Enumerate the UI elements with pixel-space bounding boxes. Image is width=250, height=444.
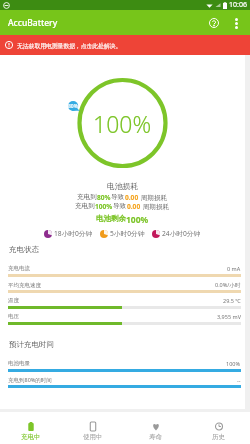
- staticText: 29.5 ℃: [223, 297, 241, 304]
- button[interactable]: 电压: [0, 312, 245, 328]
- button[interactable]: 平均充电速度: [0, 280, 245, 296]
- staticText: 充电到80%的时间: [8, 376, 52, 384]
- button[interactable]: 无法获取用电测量数据，点击此处解决。: [0, 35, 250, 55]
- button[interactable]: 充电中: [0, 416, 62, 441]
- staticText: 10:06: [229, 0, 247, 10]
- staticText: 历史: [212, 433, 225, 441]
- staticText: 平均充电速度: [8, 282, 41, 289]
- staticText: 导致: [111, 193, 125, 201]
- button[interactable]: 使用中: [62, 416, 124, 441]
- staticText: 导致: [113, 202, 127, 210]
- staticText: 周期损耗: [141, 202, 170, 211]
- button[interactable]: Help: [203, 12, 225, 34]
- staticText: 100%: [226, 360, 241, 367]
- staticText: 电池电量: [8, 360, 30, 367]
- staticText: 使用中: [83, 433, 103, 441]
- staticText: 0.00: [125, 193, 139, 202]
- button[interactable]: 充电电流: [0, 264, 245, 280]
- staticText: 充电到: [77, 193, 97, 201]
- button[interactable]: 18小时0分钟: [44, 229, 93, 238]
- staticText: 预计充电时间: [9, 340, 245, 349]
- staticText: --: [237, 377, 241, 384]
- staticText: 100%: [93, 108, 152, 139]
- staticText: 充电电流: [8, 265, 30, 272]
- staticText: 寿命: [149, 433, 162, 441]
- button[interactable]: 历史: [187, 416, 250, 441]
- staticText: 5小时0分钟: [110, 229, 145, 238]
- staticText: 18小时0分钟: [54, 229, 93, 238]
- staticText: 充电到: [75, 202, 95, 210]
- button[interactable]: 电池电量: [0, 359, 245, 375]
- staticText: 3,955 mV: [217, 313, 241, 320]
- staticText: 电压: [8, 313, 19, 320]
- staticText: 0.0%/小时: [215, 281, 241, 289]
- staticText: 周期损耗: [139, 193, 168, 202]
- button[interactable]: 寿命: [124, 416, 187, 441]
- staticText: 80%: [68, 103, 78, 110]
- staticText: 0 mA: [227, 265, 241, 272]
- button[interactable]: More options: [225, 12, 247, 34]
- button[interactable]: 充电到80%的时间: [0, 375, 245, 391]
- staticText: 充电状态: [9, 245, 245, 254]
- staticText: 充电中: [21, 433, 41, 441]
- staticText: 100%: [126, 214, 149, 226]
- button[interactable]: 24小时0分钟: [152, 229, 201, 238]
- staticText: AccuBattery: [8, 17, 58, 29]
- staticText: 80%: [97, 193, 111, 202]
- staticText: 电池损耗: [107, 181, 139, 191]
- staticText: 无法获取用电测量数据，点击此处解决。: [17, 42, 122, 49]
- button[interactable]: 温度: [0, 296, 245, 312]
- staticText: 温度: [8, 297, 19, 304]
- button[interactable]: 5小时0分钟: [100, 229, 145, 238]
- staticText: 24小时0分钟: [162, 229, 201, 238]
- staticText: 0.00: [127, 202, 141, 211]
- staticText: 电池剩余: [96, 214, 126, 223]
- staticText: 100%: [95, 202, 113, 211]
